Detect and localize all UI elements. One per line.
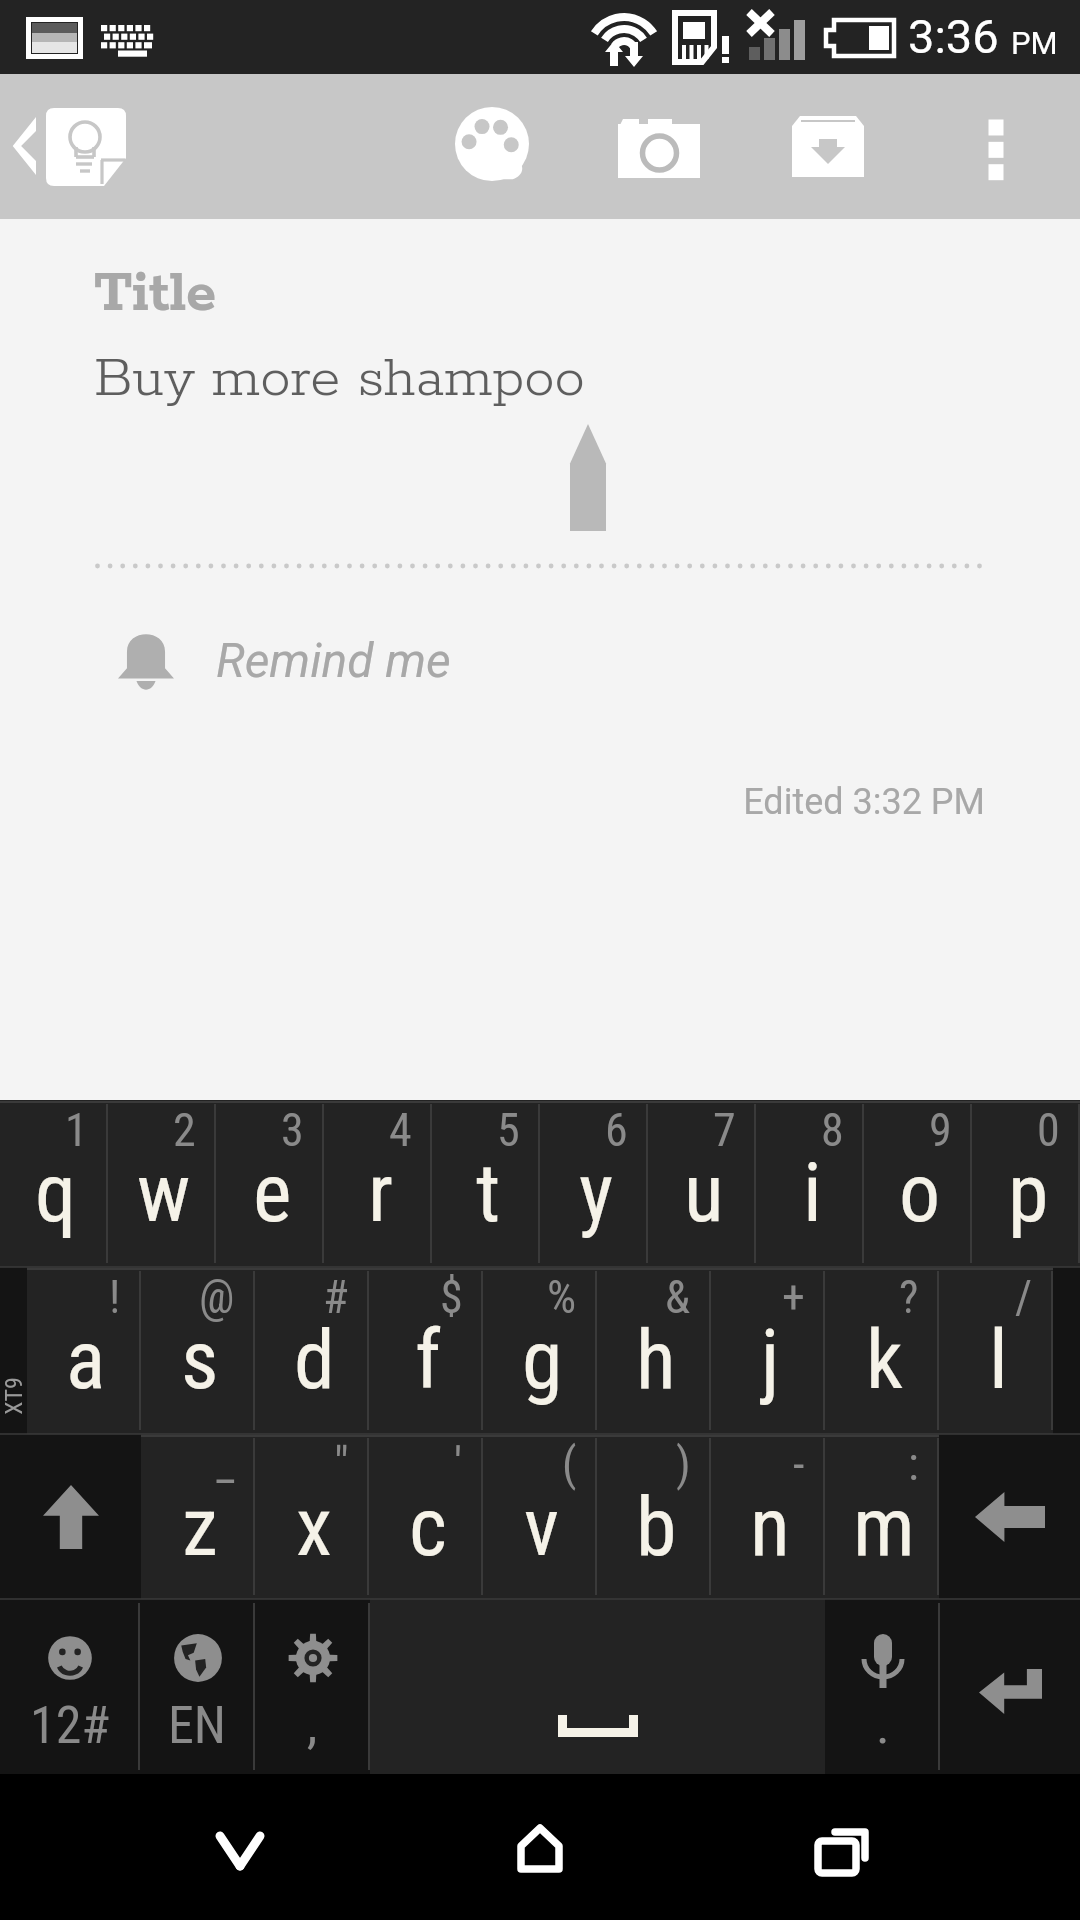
button[interactable]: / [939,1267,1053,1434]
staticText: + [782,1270,805,1324]
staticText: : [908,1437,919,1491]
staticText: t [476,1145,501,1241]
button[interactable]: _ [141,1434,255,1599]
button[interactable]: Home [400,1774,680,1919]
staticText: f [415,1312,441,1408]
staticText: , [307,1695,318,1756]
staticText: x [296,1479,332,1575]
button[interactable]: More options [951,74,1041,219]
staticText: @ [199,1270,235,1324]
staticText: r [368,1145,393,1241]
staticText: v [524,1479,560,1575]
staticText: ) [676,1437,691,1491]
staticText: ! [109,1270,121,1324]
staticText: l [989,1312,1008,1408]
staticText: i [803,1145,822,1241]
button[interactable]: Enter [940,1599,1080,1774]
button[interactable]: 9 [864,1100,972,1267]
button[interactable]: 4 [324,1100,432,1267]
button[interactable]: : [825,1434,939,1599]
staticText: k [866,1312,903,1408]
staticText: 9 [929,1103,952,1157]
staticText: % [547,1270,577,1324]
staticText: s [181,1312,219,1408]
staticText: p [1008,1145,1049,1241]
staticText: XT9 [0,1351,28,1441]
button[interactable]: Take photo [605,74,715,219]
button[interactable]: 0 [972,1100,1080,1267]
button[interactable]: " [255,1434,369,1599]
button[interactable]: & [597,1267,711,1434]
staticText: . [876,1695,890,1756]
button[interactable]: 2 [108,1100,216,1267]
staticText: b [636,1479,677,1575]
button[interactable]: Shift [0,1434,141,1599]
button[interactable]: 3 [216,1100,324,1267]
button[interactable]: - [711,1434,825,1599]
staticText: u [684,1145,724,1241]
button[interactable]: Backspace [939,1434,1080,1599]
staticText: m [853,1479,915,1575]
button[interactable]: 5 [432,1100,540,1267]
staticText: d [294,1312,335,1408]
staticText: h [636,1312,676,1408]
button[interactable]: # [255,1267,369,1434]
staticText: 7 [713,1103,736,1157]
staticText: - [793,1437,805,1491]
staticText: 6 [605,1103,628,1157]
staticText: 1 [65,1103,88,1157]
button[interactable]: XT9 [0,1267,27,1434]
staticText: PM [1011,25,1058,61]
staticText: ' [454,1437,463,1491]
button[interactable]: Change language [140,1599,255,1774]
staticText: " [334,1437,349,1491]
staticText: y [579,1145,614,1241]
button[interactable]: Recent apps [700,1774,980,1919]
staticText: / [1015,1270,1033,1324]
button[interactable]: Archive [773,74,883,219]
staticText: EN [168,1695,227,1756]
button[interactable]: Settings [255,1599,370,1774]
button[interactable]: Emoji [0,1599,140,1774]
button[interactable]: 7 [648,1100,756,1267]
staticText: Title [94,259,217,329]
button[interactable]: % [483,1267,597,1434]
staticText: Remind me [216,632,451,688]
staticText: q [35,1145,77,1241]
staticText: & [665,1270,691,1324]
staticText: $ [440,1270,463,1324]
button[interactable]: Change colour [437,74,547,219]
staticText: 12# [30,1695,110,1756]
button[interactable]: Voice input [825,1599,940,1774]
button[interactable]: Space [370,1599,825,1774]
staticText: a [66,1312,106,1408]
button[interactable]: 6 [540,1100,648,1267]
button[interactable]: $ [369,1267,483,1434]
button[interactable]: ! [27,1267,141,1434]
button[interactable]: Remind me [96,610,984,710]
button[interactable]: @ [141,1267,255,1434]
button[interactable]: ( [483,1434,597,1599]
staticText: g [522,1312,563,1408]
staticText: 5 [497,1103,520,1157]
button[interactable]: Hide keyboard [100,1774,380,1919]
button[interactable]: 8 [756,1100,864,1267]
staticText: ( [562,1437,577,1491]
staticText: n [750,1479,790,1575]
staticText: Edited 3:32 PM [0,781,985,823]
staticText: w [137,1145,191,1241]
button[interactable]: Navigate up [0,74,150,219]
button[interactable]: ) [597,1434,711,1599]
button[interactable]: + [711,1267,825,1434]
staticText: 4 [389,1103,412,1157]
staticText: 3:36 [908,9,999,64]
button[interactable]: ? [825,1267,939,1434]
button[interactable]: 1 [0,1100,108,1267]
staticText: e [253,1145,292,1241]
staticText: Buy more shampoo [94,345,585,414]
staticText: 0 [1037,1103,1060,1157]
staticText: o [899,1145,941,1241]
button[interactable]: ' [369,1434,483,1599]
staticText: z [182,1479,218,1575]
staticText: j [761,1312,780,1408]
